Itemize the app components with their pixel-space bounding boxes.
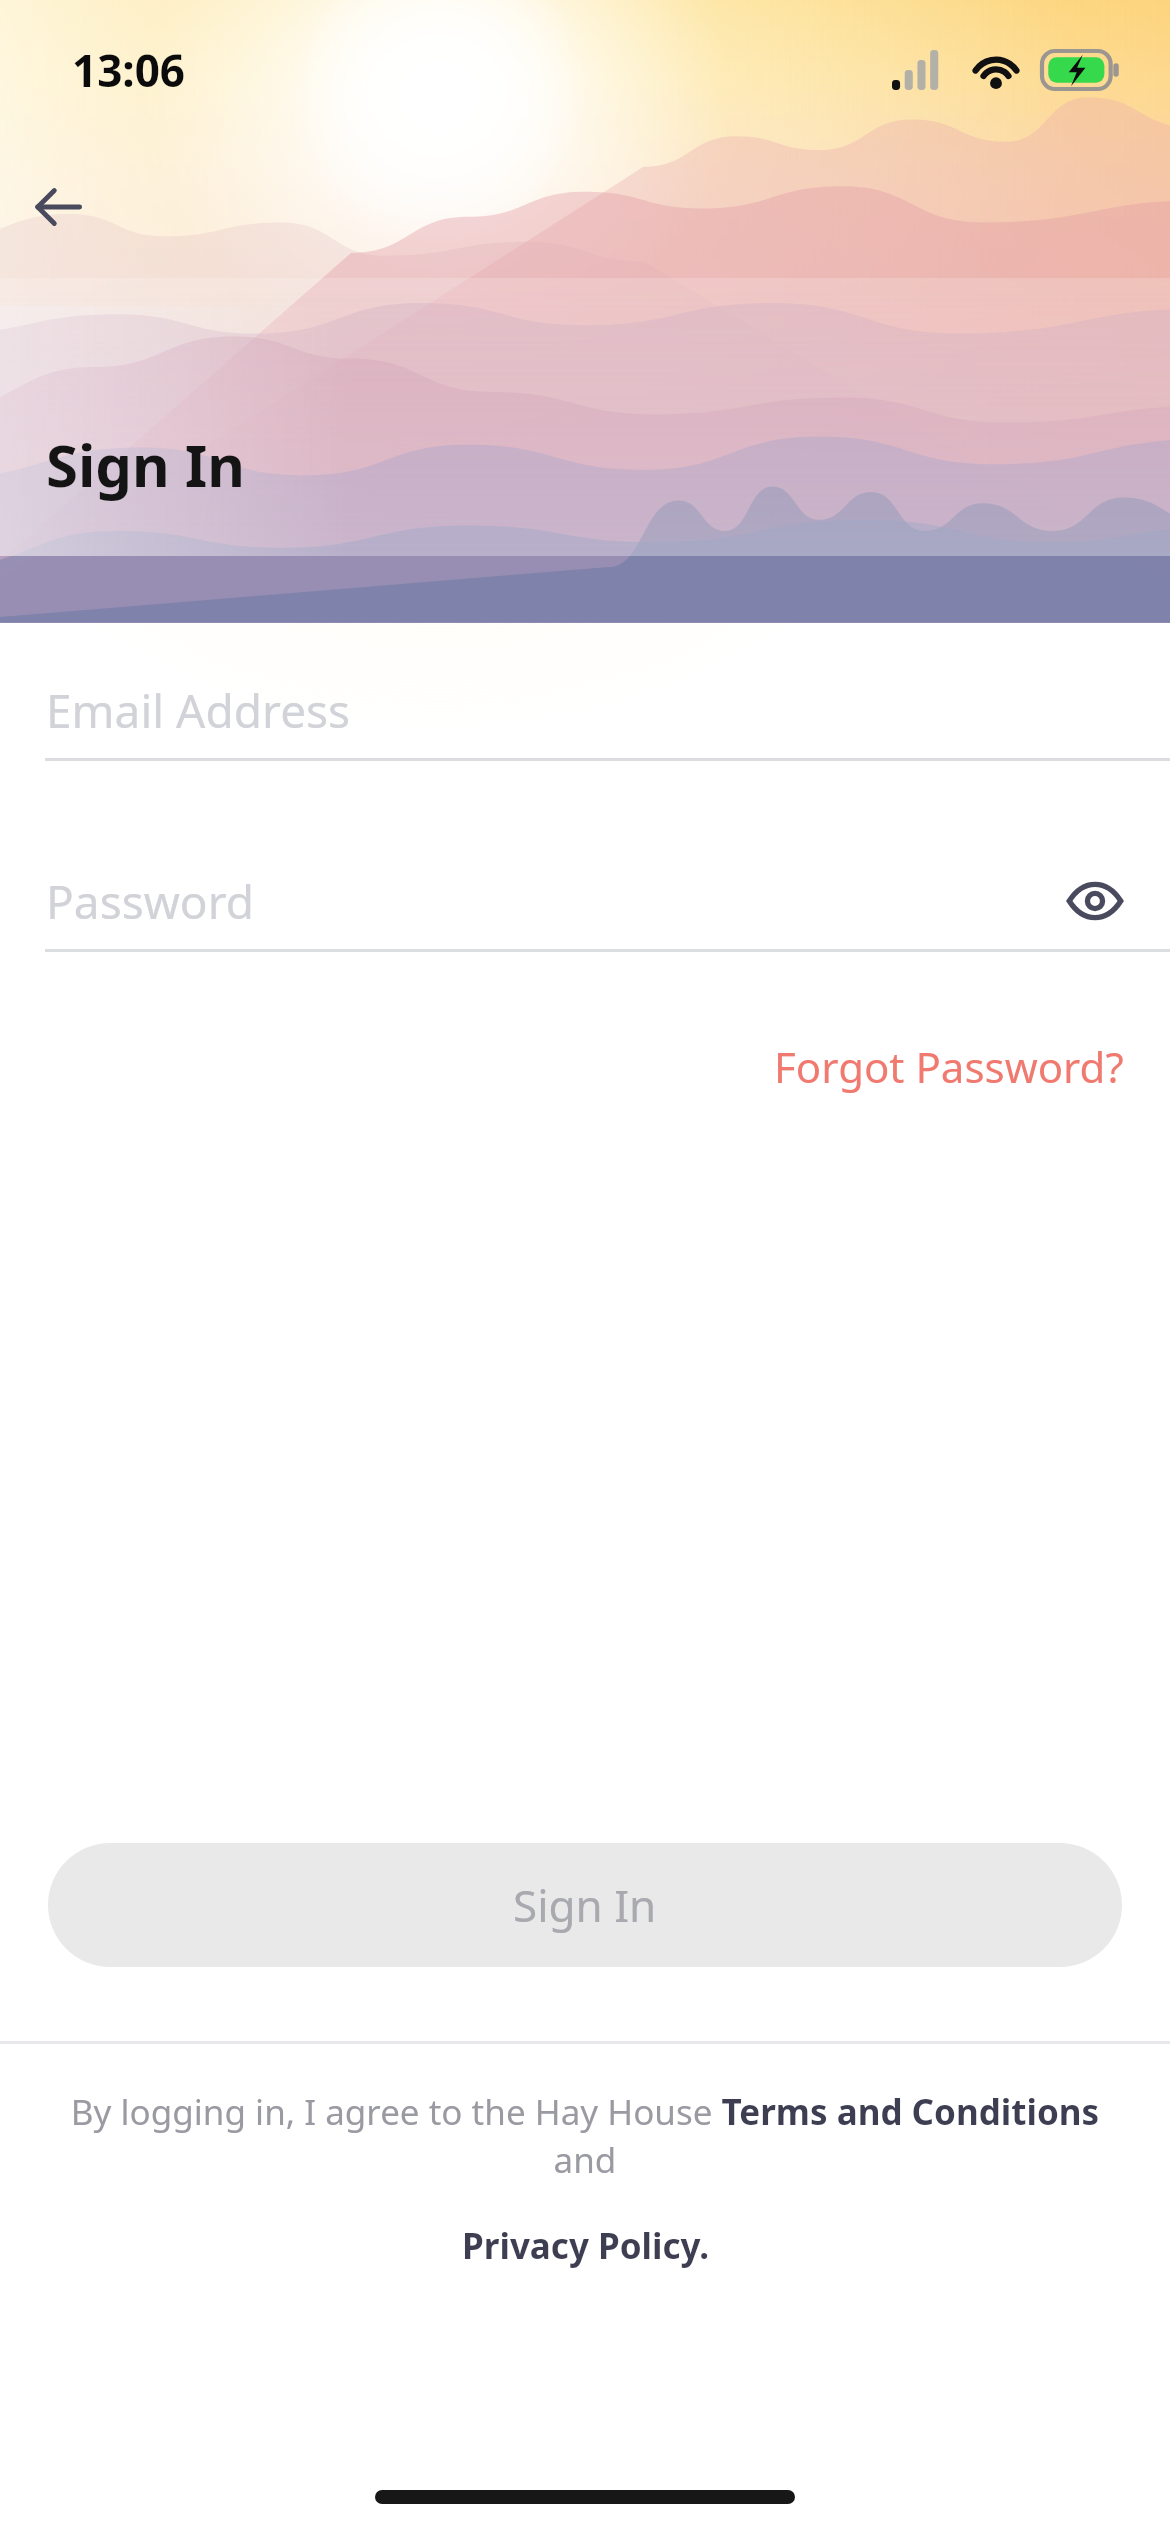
staticText: By logging in, I agree to the Hay House … xyxy=(42,2088,1128,2184)
staticText: Email Address xyxy=(46,679,351,742)
staticText: Password xyxy=(46,870,255,933)
staticText: Sign In xyxy=(513,1875,657,1935)
staticText: Sign In xyxy=(46,425,245,504)
button[interactable]: Password xyxy=(0,853,1170,952)
staticText: Forgot Password? xyxy=(774,1038,1124,1095)
button[interactable]: Sign In xyxy=(48,1843,1122,1967)
button[interactable]: Forgot Password? xyxy=(728,1024,1170,1109)
button[interactable]: Privacy Policy. xyxy=(462,2222,709,2270)
staticText: Privacy Policy. xyxy=(462,2222,709,2270)
button[interactable]: Email Address xyxy=(0,662,1170,761)
button[interactable]: Back xyxy=(14,163,102,251)
button[interactable]: Show password xyxy=(1058,864,1132,938)
staticText: 13:06 xyxy=(72,40,186,100)
